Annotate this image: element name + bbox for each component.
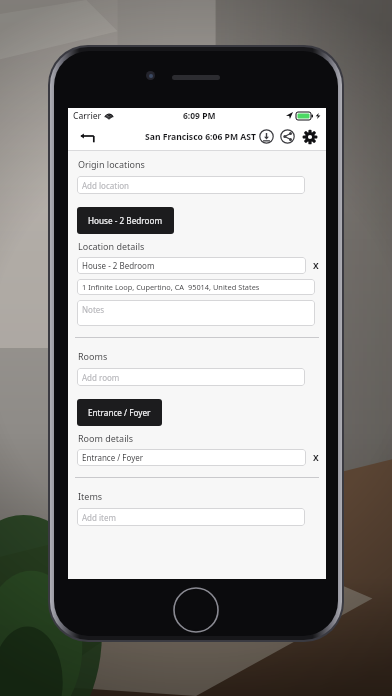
staticText: Location details <box>78 240 145 252</box>
button[interactable]: X <box>306 257 326 274</box>
staticText: Entrance / Foyer <box>88 407 151 418</box>
button[interactable]: Notes <box>77 300 315 326</box>
staticText: San Francisco 6:06 PM AST <box>145 131 256 143</box>
staticText: Rooms <box>78 350 108 362</box>
staticText: House - 2 Bedroom <box>88 215 163 226</box>
staticText: X <box>313 260 319 272</box>
staticText: House - 2 Bedroom <box>82 260 155 271</box>
staticText: Entrance / Foyer <box>82 452 144 463</box>
button[interactable]: X <box>306 449 326 466</box>
button[interactable]: Entrance / Foyer <box>77 399 162 426</box>
staticText: X <box>313 452 319 464</box>
button[interactable]: House - 2 Bedroom <box>77 257 306 274</box>
button[interactable]: House - 2 Bedroom <box>77 207 174 234</box>
staticText: Add room <box>82 372 120 383</box>
staticText: Room details <box>78 432 134 444</box>
button[interactable]: Settings <box>300 127 320 147</box>
button[interactable]: Add location <box>77 176 305 194</box>
button[interactable]: Share <box>278 127 297 146</box>
button[interactable]: Add item <box>77 508 305 526</box>
button[interactable]: Entrance / Foyer <box>77 449 306 466</box>
staticText: Items <box>78 490 103 502</box>
staticText: Origin locations <box>78 158 145 170</box>
staticText: Add item <box>82 512 116 523</box>
staticText: 6:09 PM <box>183 110 216 122</box>
button[interactable]: Add room <box>77 368 305 386</box>
button[interactable]: Download <box>257 127 276 146</box>
staticText: Carrier <box>73 110 102 122</box>
button[interactable]: Back <box>74 124 100 150</box>
staticText: Add location <box>82 180 129 191</box>
staticText: 1 Infinite Loop, Cupertino, CA 95014, Un… <box>82 282 260 292</box>
staticText: Notes <box>82 304 105 315</box>
button[interactable]: 1 Infinite Loop, Cupertino, CA 95014, Un… <box>77 279 315 295</box>
